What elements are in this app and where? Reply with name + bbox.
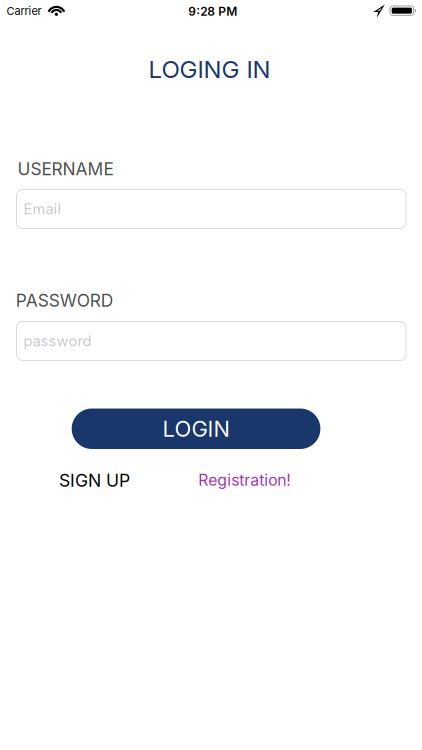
button[interactable]: password xyxy=(16,321,406,360)
staticText: Carrier xyxy=(6,4,41,18)
staticText: SIGN UP xyxy=(59,470,130,491)
staticText: LOGING IN xyxy=(148,54,270,84)
staticText: password xyxy=(23,332,91,350)
staticText: PASSWORD xyxy=(16,290,114,311)
staticText: Email xyxy=(23,200,61,218)
button[interactable]: LOGIN xyxy=(72,408,320,449)
staticText: USERNAME xyxy=(17,158,113,179)
button[interactable]: SIGN UP xyxy=(59,470,130,491)
staticText: 9:28 PM xyxy=(188,4,237,19)
staticText: Registration! xyxy=(198,471,291,490)
staticText: LOGIN xyxy=(163,415,230,442)
button[interactable]: Registration! xyxy=(198,471,291,490)
button[interactable]: Email xyxy=(16,189,406,228)
